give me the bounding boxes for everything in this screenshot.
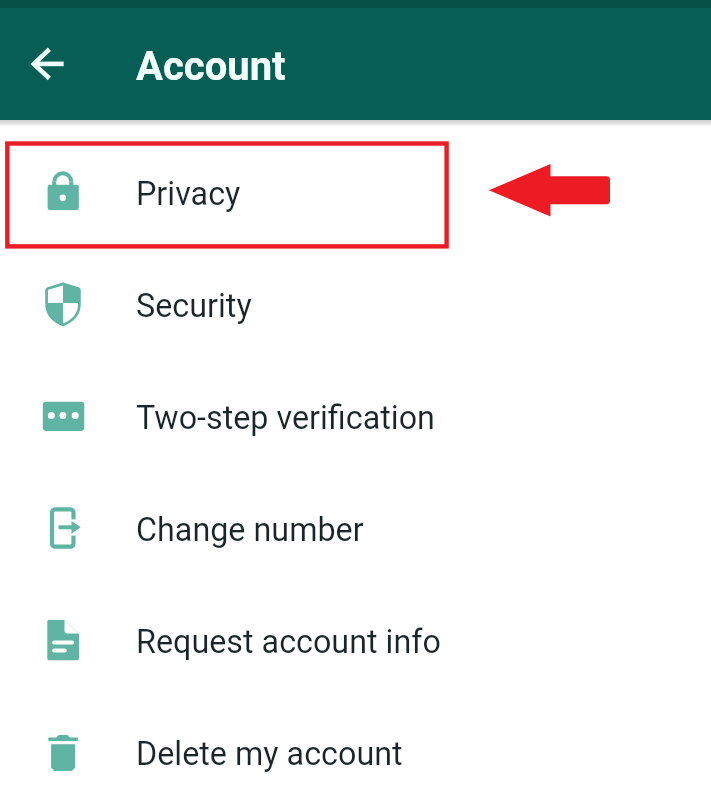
staticText: Request account info (136, 623, 441, 661)
staticText: Account (136, 43, 286, 90)
staticText: Delete my account (136, 735, 403, 773)
staticText: Change number (136, 511, 364, 549)
staticText: Security (136, 287, 252, 325)
button[interactable]: Change number (0, 471, 711, 583)
button[interactable]: Delete my account (0, 695, 711, 785)
staticText: Privacy (136, 175, 241, 213)
staticText: Two-step verification (136, 399, 435, 437)
button[interactable]: Back (16, 32, 80, 96)
button[interactable]: Security (0, 247, 711, 359)
button[interactable]: Two-step verification (0, 359, 711, 471)
button[interactable]: Privacy (0, 135, 711, 247)
button[interactable]: Request account info (0, 583, 711, 695)
